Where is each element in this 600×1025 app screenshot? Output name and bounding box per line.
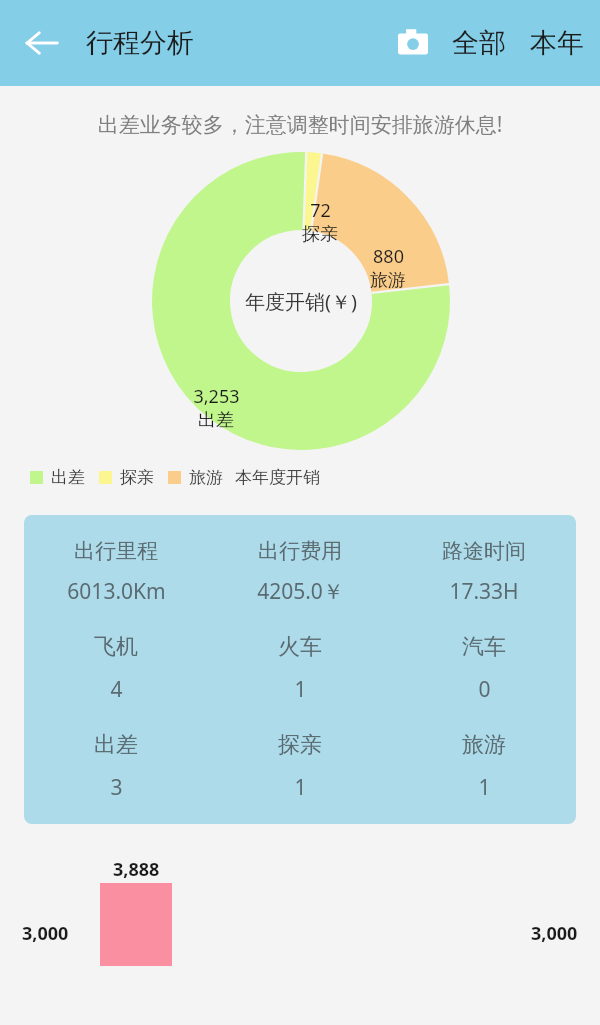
staticText: 出差业务较多，注意调整时间安排旅游休息! (0, 110, 600, 139)
staticText: 1 (294, 675, 307, 704)
staticText: 3,888 (113, 857, 160, 882)
staticText: 出差 (198, 409, 234, 432)
staticText: 出行里程 (74, 538, 158, 564)
staticText: 3,253 (193, 384, 240, 409)
staticText: 旅游 (462, 731, 506, 759)
staticText: 探亲 (120, 467, 154, 488)
staticText: 1 (478, 773, 491, 802)
staticText: 出行费用 (258, 538, 342, 564)
staticText: 旅游 (370, 269, 406, 292)
staticText: 汽车 (462, 633, 506, 661)
staticText: 火车 (278, 633, 322, 661)
staticText: 全部 (452, 26, 506, 60)
staticText: 旅游 (189, 467, 223, 488)
staticText: 飞机 (94, 633, 138, 661)
button[interactable]: 全部 (446, 20, 512, 66)
staticText: 出差 (94, 731, 138, 759)
staticText: 880 (373, 244, 404, 269)
staticText: 6013.0Km (67, 577, 166, 606)
button[interactable]: 出行里程 (24, 515, 576, 824)
staticText: 本年 (530, 26, 584, 60)
staticText: 行程分析 (86, 26, 194, 60)
staticText: 年度开销(￥) (245, 288, 357, 315)
staticText: 3 (110, 773, 123, 802)
staticText: 3,000 (22, 921, 69, 946)
staticText: 17.33H (449, 577, 519, 606)
staticText: 1 (294, 773, 307, 802)
button[interactable]: 本年 (524, 20, 590, 66)
staticText: 探亲 (302, 223, 338, 246)
staticText: 本年度开销 (235, 467, 320, 488)
staticText: 72 (310, 198, 331, 223)
button[interactable]: Camera (386, 16, 440, 70)
staticText: 3,000 (531, 921, 578, 946)
staticText: 出差 (51, 467, 85, 488)
staticText: 探亲 (278, 731, 322, 759)
staticText: 4205.0￥ (257, 577, 344, 606)
button[interactable]: Back (14, 15, 70, 71)
staticText: 路途时间 (442, 538, 526, 564)
staticText: 4 (110, 675, 123, 704)
staticText: 0 (478, 675, 491, 704)
